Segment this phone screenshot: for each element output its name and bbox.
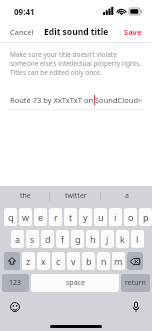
button[interactable]: Save xyxy=(120,24,146,40)
staticText: q xyxy=(8,211,14,223)
button[interactable]: space xyxy=(31,274,119,292)
staticText: Edit sound title xyxy=(44,26,109,38)
staticText: c xyxy=(56,255,61,267)
button[interactable]: Route 73 by XxTxTxT on xyxy=(0,91,152,109)
staticText: the xyxy=(20,191,31,201)
button[interactable]: n xyxy=(97,252,110,270)
button[interactable]: Cancel xyxy=(6,24,38,40)
staticText: u xyxy=(98,211,104,223)
staticText: h xyxy=(90,233,96,245)
staticText: w xyxy=(22,211,30,223)
staticText: f xyxy=(61,233,65,245)
staticText: k xyxy=(120,233,125,245)
staticText: SoundCloud xyxy=(95,95,138,105)
staticText: y xyxy=(83,211,88,223)
button[interactable]: Backspace xyxy=(127,252,143,270)
staticText: Save xyxy=(124,27,142,37)
button[interactable]: twitter xyxy=(50,186,101,206)
staticText: o xyxy=(128,211,134,223)
staticText: s xyxy=(30,233,35,245)
staticText: Cancel xyxy=(10,27,34,37)
button[interactable]: Emoji xyxy=(7,299,23,315)
button[interactable]: a xyxy=(101,186,152,206)
button[interactable]: o xyxy=(124,208,137,226)
button[interactable]: j xyxy=(101,230,114,248)
button[interactable]: Dictation xyxy=(128,299,144,315)
staticText: v xyxy=(71,255,76,267)
button[interactable]: q xyxy=(4,208,17,226)
button[interactable]: return xyxy=(121,274,150,292)
staticText: 123 xyxy=(9,278,22,288)
staticText: i xyxy=(114,211,117,223)
staticText: 09:41 xyxy=(14,6,35,17)
button[interactable]: g xyxy=(71,230,84,248)
button[interactable]: m xyxy=(112,252,125,270)
staticText: r xyxy=(54,211,58,223)
button[interactable]: v xyxy=(67,252,80,270)
button[interactable]: p xyxy=(139,208,152,226)
staticText: a xyxy=(15,233,21,245)
button[interactable]: s xyxy=(26,230,39,248)
staticText: n xyxy=(101,255,107,267)
button[interactable]: l xyxy=(131,230,144,248)
staticText: m xyxy=(114,255,123,267)
button[interactable]: d xyxy=(41,230,54,248)
button[interactable]: e xyxy=(34,208,47,226)
staticText: d xyxy=(45,233,51,245)
staticText: g xyxy=(75,233,81,245)
button[interactable]: i xyxy=(109,208,122,226)
staticText: p xyxy=(143,211,149,223)
staticText: l xyxy=(136,233,139,245)
staticText: x xyxy=(41,255,46,267)
button[interactable]: c xyxy=(52,252,65,270)
button[interactable]: z xyxy=(22,252,35,270)
button[interactable]: f xyxy=(56,230,69,248)
button[interactable]: u xyxy=(94,208,107,226)
staticText: a xyxy=(125,191,129,201)
staticText: Make sure your title doesn't violate som… xyxy=(10,50,142,77)
staticText: z xyxy=(26,255,31,267)
button[interactable]: Clear text xyxy=(138,93,142,107)
button[interactable]: w xyxy=(19,208,32,226)
button[interactable]: Shift xyxy=(4,252,20,270)
staticText: space xyxy=(66,278,85,288)
button[interactable]: r xyxy=(49,208,62,226)
button[interactable]: the xyxy=(0,186,50,206)
staticText: twitter xyxy=(65,191,87,201)
button[interactable]: k xyxy=(116,230,129,248)
button[interactable]: b xyxy=(82,252,95,270)
staticText: j xyxy=(106,233,109,245)
button[interactable]: 123 xyxy=(2,274,29,292)
staticText: b xyxy=(86,255,92,267)
button[interactable]: a xyxy=(11,230,24,248)
button[interactable]: t xyxy=(64,208,77,226)
button[interactable]: h xyxy=(86,230,99,248)
button[interactable]: y xyxy=(79,208,92,226)
staticText: Route 73 by XxTxTxT on xyxy=(10,95,94,105)
staticText: return xyxy=(125,278,146,288)
staticText: e xyxy=(38,211,44,223)
staticText: t xyxy=(69,211,73,223)
button[interactable]: x xyxy=(37,252,50,270)
